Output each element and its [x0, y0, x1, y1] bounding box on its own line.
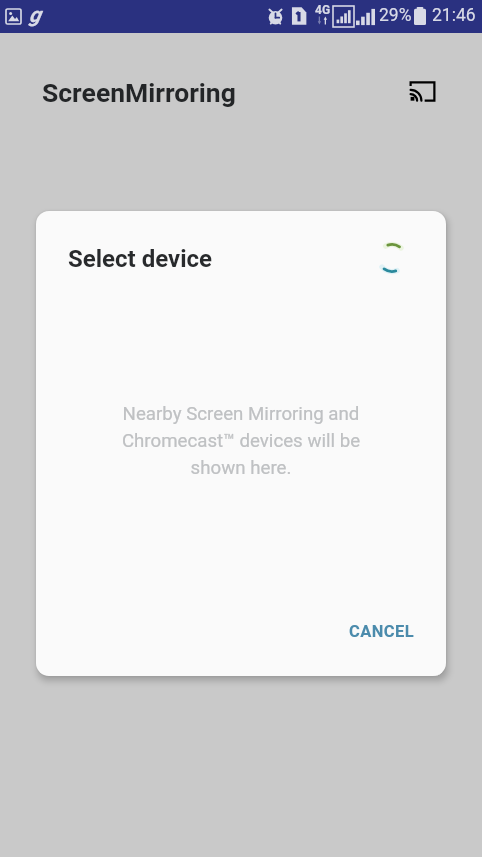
- staticText: CANCEL: [349, 622, 414, 641]
- staticText: 29%: [379, 5, 412, 26]
- staticText: ScreenMirroring: [42, 77, 236, 108]
- button[interactable]: Cast: [404, 73, 440, 109]
- staticText: Select device: [68, 245, 213, 273]
- staticText: 21:46: [432, 5, 476, 26]
- staticText: 4G: [315, 3, 331, 17]
- button[interactable]: CANCEL: [338, 613, 425, 650]
- staticText: Nearby Screen Mirroring and Chromecast™ …: [36, 403, 446, 479]
- staticText: g: [29, 3, 41, 28]
